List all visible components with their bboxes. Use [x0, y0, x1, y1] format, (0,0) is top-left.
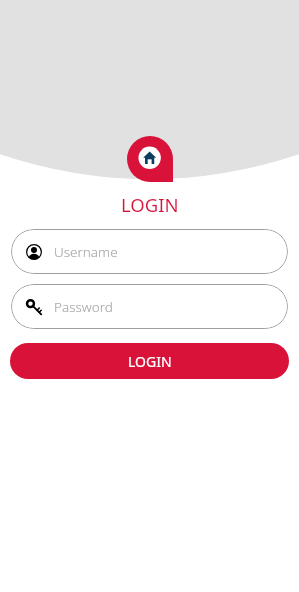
button[interactable]: Password: [11, 284, 288, 329]
staticText: Username: [54, 243, 118, 261]
button[interactable]: App logo: [127, 136, 173, 182]
button[interactable]: LOGIN: [10, 343, 289, 379]
staticText: LOGIN: [128, 352, 172, 371]
staticText: Password: [54, 298, 113, 316]
staticText: LOGIN: [121, 192, 179, 217]
button[interactable]: Username: [11, 229, 288, 274]
